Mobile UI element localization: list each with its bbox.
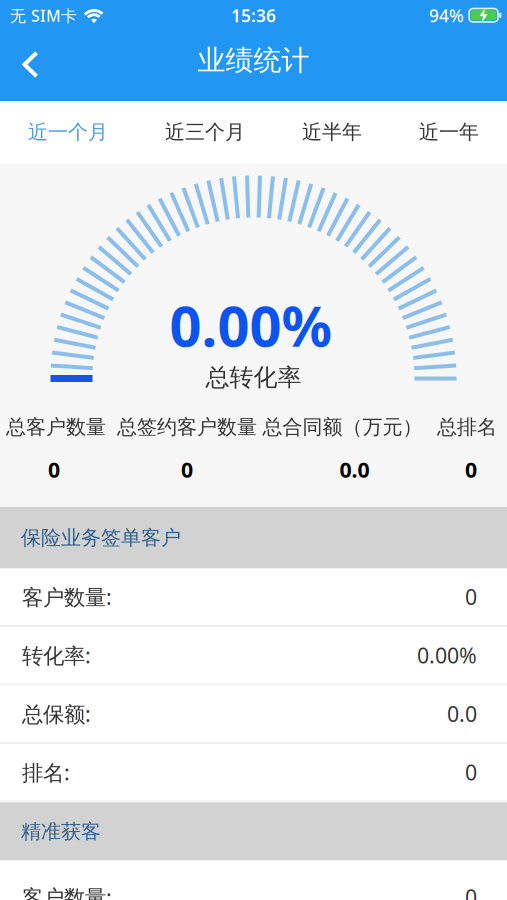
staticText: 业绩统计 (197, 43, 309, 78)
staticText: 总转化率 (205, 363, 301, 392)
staticText: 转化率: (22, 641, 91, 669)
staticText: 客户数量: (22, 883, 112, 900)
staticText: 排名: (22, 758, 70, 786)
staticText: 客户数量: (22, 583, 112, 611)
staticText: 总合同额（万元） (262, 415, 422, 439)
staticText: 近一个月 (28, 120, 108, 144)
staticText: 0 (181, 455, 193, 484)
staticText: 总保额: (22, 700, 91, 728)
staticText: 无 SIM卡 (10, 5, 77, 26)
button[interactable]: 返回 (0, 42, 40, 89)
staticText: 近一年 (419, 120, 479, 144)
staticText: 0.00% (417, 641, 477, 669)
staticText: 总签约客户数量 (117, 415, 257, 439)
staticText: 0 (465, 758, 477, 786)
staticText: 近半年 (302, 120, 362, 144)
button[interactable]: 近半年 (302, 101, 362, 163)
staticText: 0.0 (339, 455, 369, 484)
staticText: 近三个月 (165, 120, 245, 144)
button[interactable]: 近三个月 (165, 101, 245, 163)
staticText: 0 (465, 583, 477, 611)
staticText: 0.00% (169, 288, 332, 362)
staticText: 0.0 (447, 700, 477, 728)
staticText: 总客户数量 (6, 415, 106, 439)
staticText: 精准获客 (21, 819, 101, 844)
staticText: 0 (465, 883, 477, 900)
button[interactable]: 近一年 (419, 101, 479, 163)
staticText: 94% (429, 4, 464, 27)
staticText: 15:36 (231, 4, 276, 27)
button[interactable]: 近一个月 (28, 101, 108, 163)
staticText: 总排名 (437, 415, 497, 439)
staticText: 0 (465, 455, 477, 484)
staticText: 保险业务签单客户 (21, 525, 181, 550)
staticText: 0 (48, 455, 60, 484)
